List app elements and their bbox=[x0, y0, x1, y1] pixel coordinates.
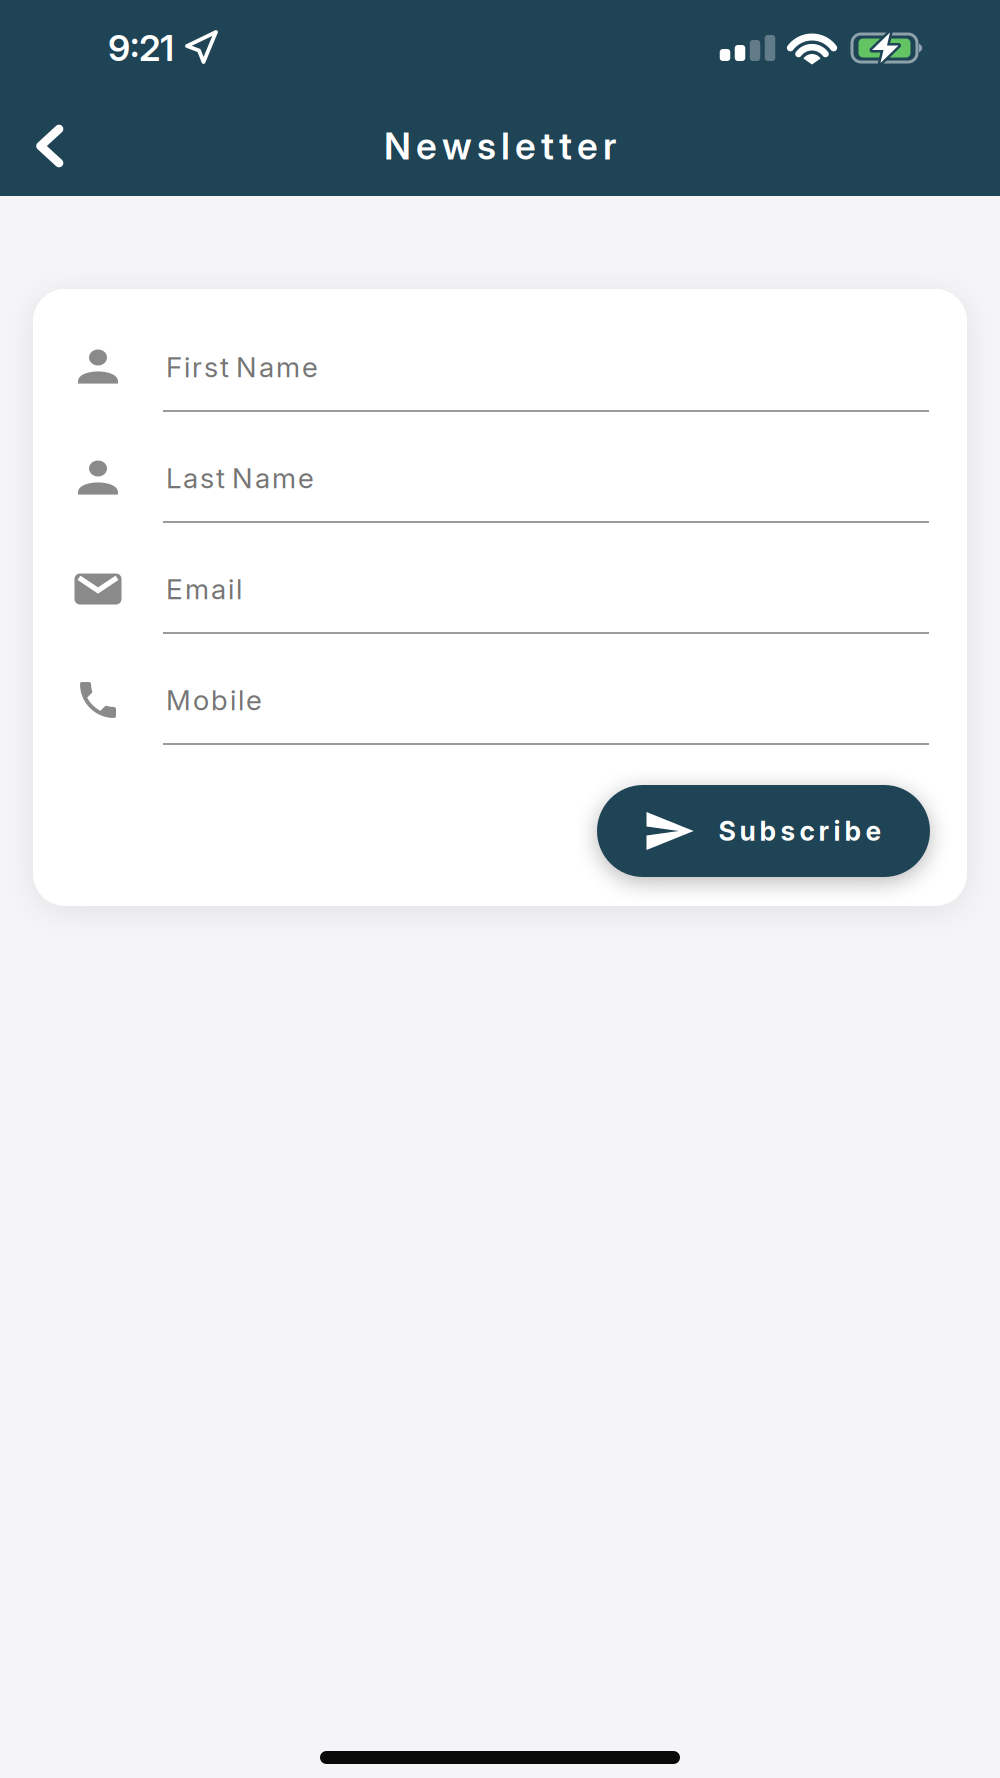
staticText: N e w s l e t t e r bbox=[384, 124, 616, 168]
staticText: 9:21 bbox=[108, 26, 174, 70]
staticText: L a s t N a m e bbox=[166, 461, 314, 495]
staticText: M o b i l e bbox=[166, 683, 262, 717]
button[interactable]: M o b i l e bbox=[33, 678, 967, 745]
staticText: S u b s c r i b e bbox=[718, 815, 881, 847]
staticText: E m a i l bbox=[166, 572, 242, 606]
button[interactable]: S u b s c r i b e bbox=[597, 785, 930, 877]
button[interactable]: E m a i l bbox=[33, 567, 967, 634]
button[interactable]: F i r s t N a m e bbox=[33, 345, 967, 412]
staticText: F i r s t N a m e bbox=[166, 350, 318, 384]
button[interactable]: L a s t N a m e bbox=[33, 456, 967, 523]
button[interactable]: Back bbox=[0, 112, 66, 179]
